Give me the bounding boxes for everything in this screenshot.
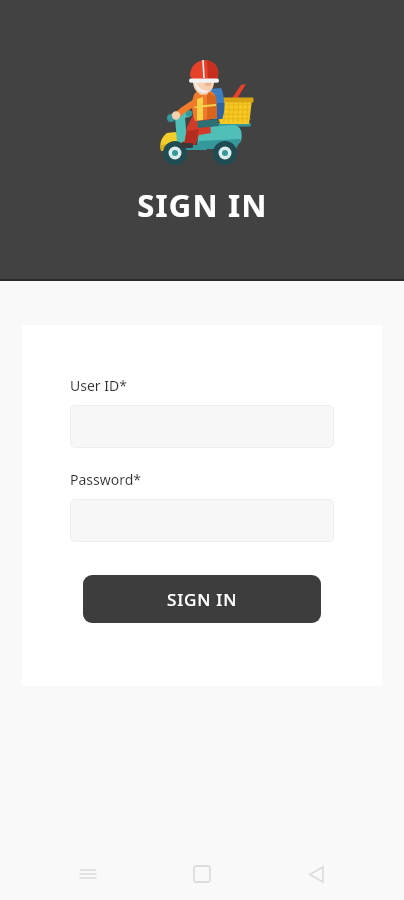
button[interactable]: Recent apps <box>62 848 114 900</box>
staticText: User ID* <box>70 376 127 395</box>
button[interactable]: Back <box>290 848 342 900</box>
staticText: SIGN IN <box>167 588 238 611</box>
button[interactable]: Home <box>176 848 228 900</box>
button[interactable]: SIGN IN <box>83 575 321 623</box>
staticText: SIGN IN <box>137 184 268 226</box>
staticText: Password* <box>70 470 142 489</box>
